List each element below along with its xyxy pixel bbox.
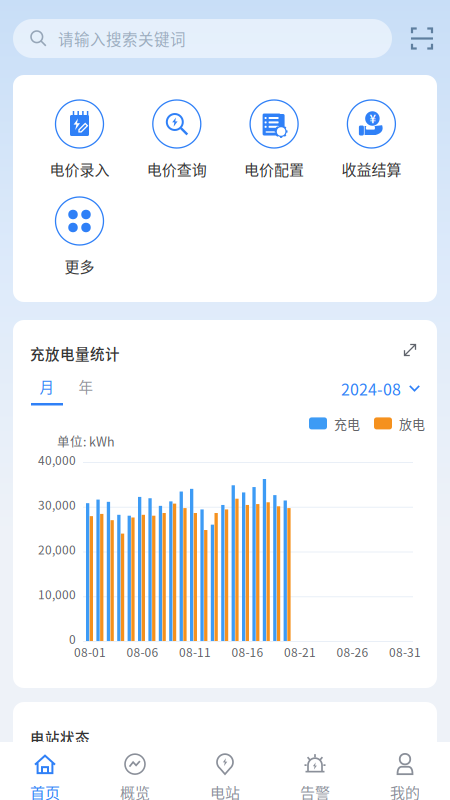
button[interactable]: 请输入搜索关键词	[13, 19, 392, 58]
button[interactable]: 扫一扫	[411, 27, 433, 49]
staticText: 请输入搜索关键词	[58, 27, 186, 50]
staticText: 电站状态	[30, 727, 90, 748]
staticText: 充放电量统计	[30, 343, 120, 364]
staticText: 30,000	[38, 496, 76, 513]
staticText: 放电	[399, 414, 425, 433]
staticText: 概览	[120, 781, 150, 800]
button[interactable]: 年	[69, 376, 103, 397]
button[interactable]: ¥	[323, 100, 420, 180]
staticText: 充电	[334, 414, 360, 433]
button[interactable]: 电价配置	[226, 100, 323, 180]
staticText: 首页	[30, 781, 60, 800]
button[interactable]: 概览	[90, 740, 180, 800]
staticText: 40,000	[38, 451, 76, 468]
staticText: 20,000	[38, 540, 76, 558]
staticText: 电价查询	[147, 158, 207, 180]
button[interactable]: 我的	[360, 740, 450, 800]
staticText: 08-06	[126, 643, 158, 660]
button[interactable]: 首页	[0, 740, 90, 800]
staticText: 我的	[390, 781, 420, 800]
staticText: 月	[39, 376, 54, 397]
staticText: 10,000	[38, 585, 76, 603]
staticText: 电价录入	[49, 158, 109, 180]
staticText: 2024-08	[341, 377, 401, 400]
button[interactable]: 告警	[270, 740, 360, 800]
staticText: 年	[78, 376, 93, 397]
button[interactable]: 全屏显示	[403, 343, 417, 357]
staticText: 电站	[210, 781, 240, 800]
staticText: ¥	[369, 111, 375, 126]
button[interactable]: 电站	[180, 740, 270, 800]
staticText: 08-26	[336, 643, 368, 660]
staticText: 单位: kWh	[57, 432, 115, 450]
button[interactable]: 电价查询	[128, 100, 225, 180]
staticText: 收益结算	[341, 158, 401, 180]
button[interactable]: 月	[30, 376, 64, 405]
staticText: 08-21	[284, 643, 316, 660]
staticText: 0	[69, 630, 76, 647]
staticText: 08-01	[74, 643, 106, 660]
staticText: 08-16	[231, 643, 263, 660]
staticText: 告警	[300, 781, 330, 800]
staticText: 更多	[64, 255, 94, 277]
button[interactable]: 更多	[31, 197, 128, 277]
button[interactable]: 电价录入	[31, 100, 128, 180]
button[interactable]: 2024-08	[341, 377, 420, 400]
staticText: 08-31	[389, 643, 421, 660]
staticText: 08-11	[179, 643, 211, 660]
staticText: 电价配置	[244, 158, 304, 180]
